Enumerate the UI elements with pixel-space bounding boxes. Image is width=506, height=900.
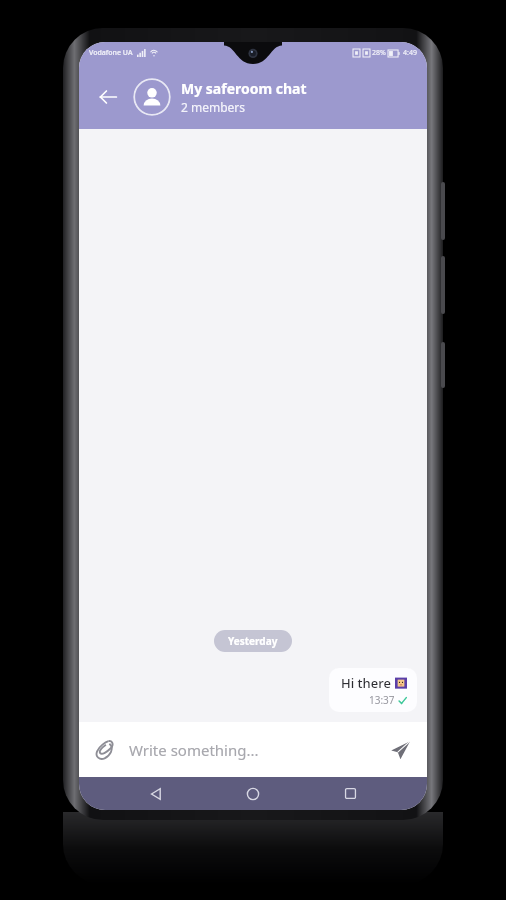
button[interactable]: Attach file: [91, 736, 119, 764]
staticText: Write something...: [129, 740, 259, 760]
staticText: 13:37: [369, 693, 395, 707]
staticText: 4:49: [403, 48, 417, 58]
button[interactable]: Back: [136, 777, 176, 810]
button[interactable]: Yesterday: [214, 630, 292, 652]
button[interactable]: My saferoom chat: [181, 79, 307, 115]
button[interactable]: Write something...: [129, 730, 385, 770]
button[interactable]: Chat avatar: [133, 78, 171, 116]
staticText: My saferoom chat: [181, 79, 307, 98]
button[interactable]: Hi there: [329, 668, 417, 712]
button[interactable]: Home: [233, 777, 273, 810]
button[interactable]: Back: [91, 80, 125, 114]
staticText: Vodafone UA: [89, 48, 133, 58]
staticText: Hi there: [341, 674, 391, 692]
staticText: 28%: [372, 48, 386, 58]
staticText: Yesterday: [228, 634, 278, 648]
button[interactable]: Recent apps: [330, 777, 370, 810]
button[interactable]: Send: [385, 735, 415, 765]
staticText: 2 members: [181, 99, 246, 115]
